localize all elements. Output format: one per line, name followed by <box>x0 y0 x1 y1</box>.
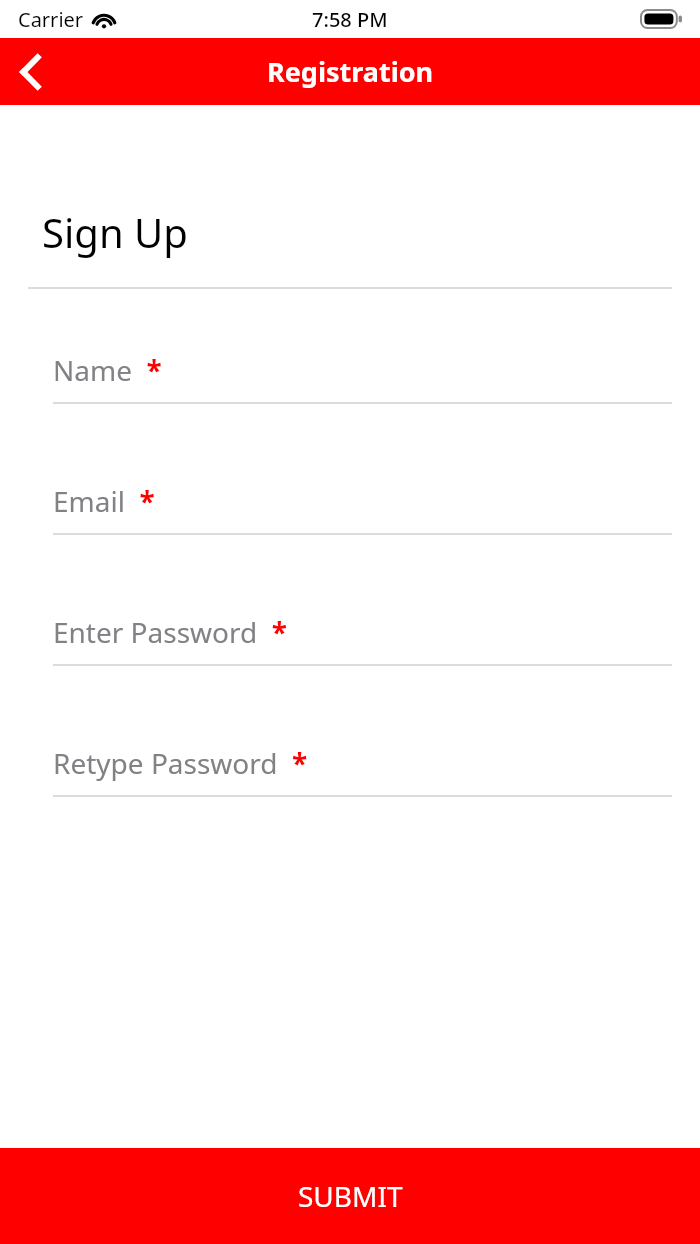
button[interactable]: Email * <box>0 482 700 535</box>
staticText: Carrier <box>18 6 84 33</box>
button[interactable]: Retype Password * <box>0 744 700 797</box>
button[interactable]: Back <box>0 38 60 105</box>
staticText: Email * <box>53 482 155 520</box>
staticText: Retype Password * <box>53 744 308 782</box>
button[interactable]: Enter Password * <box>0 613 700 666</box>
staticText: Sign Up <box>42 205 188 259</box>
button[interactable]: SUBMIT <box>0 1148 700 1244</box>
staticText: SUBMIT <box>298 1177 403 1215</box>
staticText: Registration <box>267 53 434 90</box>
staticText: Enter Password * <box>53 613 287 651</box>
button[interactable]: Name * <box>0 351 700 404</box>
staticText: Name * <box>53 351 162 389</box>
staticText: 7:58 PM <box>312 6 388 33</box>
